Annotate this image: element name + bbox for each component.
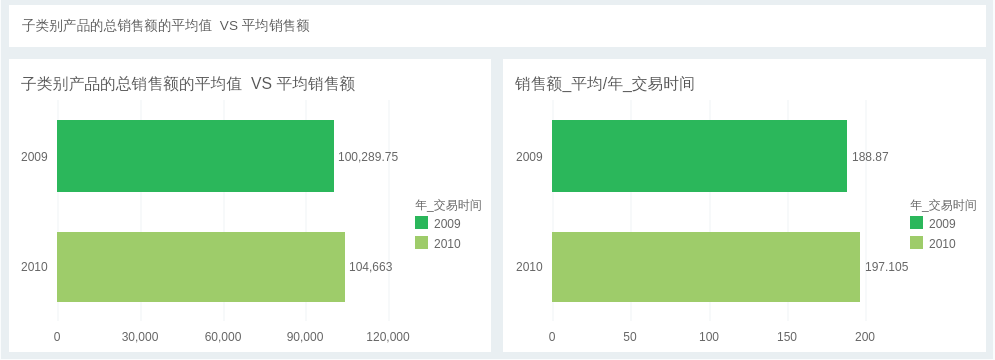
staticText: 0 — [7, 330, 107, 343]
staticText: 120,000 — [338, 330, 438, 343]
staticText: 197.105 — [865, 260, 909, 273]
button[interactable]: 年_交易时间 — [910, 198, 988, 252]
staticText: 2009 — [434, 217, 461, 230]
staticText: 100 — [659, 330, 759, 343]
staticText: 60,000 — [173, 330, 273, 343]
staticText: 90,000 — [255, 330, 355, 343]
staticText: 30,000 — [90, 330, 190, 343]
staticText: 0 — [502, 330, 602, 343]
staticText: 2009 — [516, 150, 543, 163]
staticText: 104,663 — [349, 260, 393, 273]
staticText: 2009 — [929, 217, 956, 230]
button[interactable]: 子类别产品的总销售额的平均值 VS 平均销售额 条形图 — [9, 59, 491, 352]
staticText: 年_交易时间 — [415, 197, 482, 212]
staticText: 年_交易时间 — [910, 197, 977, 212]
staticText: 2010 — [21, 260, 48, 273]
staticText: 2010 — [434, 237, 461, 250]
staticText: 2010 — [516, 260, 543, 273]
staticText: 50 — [580, 330, 680, 343]
button[interactable]: 销售额_平均/年_交易时间 条形图 — [503, 59, 986, 352]
staticText: 子类别产品的总销售额的平均值 VS 平均销售额 — [22, 17, 310, 34]
button[interactable]: 年_交易时间 — [415, 198, 493, 252]
staticText: 2009 — [21, 150, 48, 163]
button[interactable]: 子类别产品的总销售额的平均值 VS 平均销售额 — [9, 5, 986, 47]
staticText: 100,289.75 — [338, 150, 399, 163]
staticText: 2010 — [929, 237, 956, 250]
staticText: 150 — [737, 330, 837, 343]
staticText: 200 — [815, 330, 915, 343]
staticText: 销售额_平均/年_交易时间 — [515, 74, 695, 94]
staticText: 188.87 — [852, 150, 889, 163]
staticText: 子类别产品的总销售额的平均值 VS 平均销售额 — [21, 74, 356, 94]
